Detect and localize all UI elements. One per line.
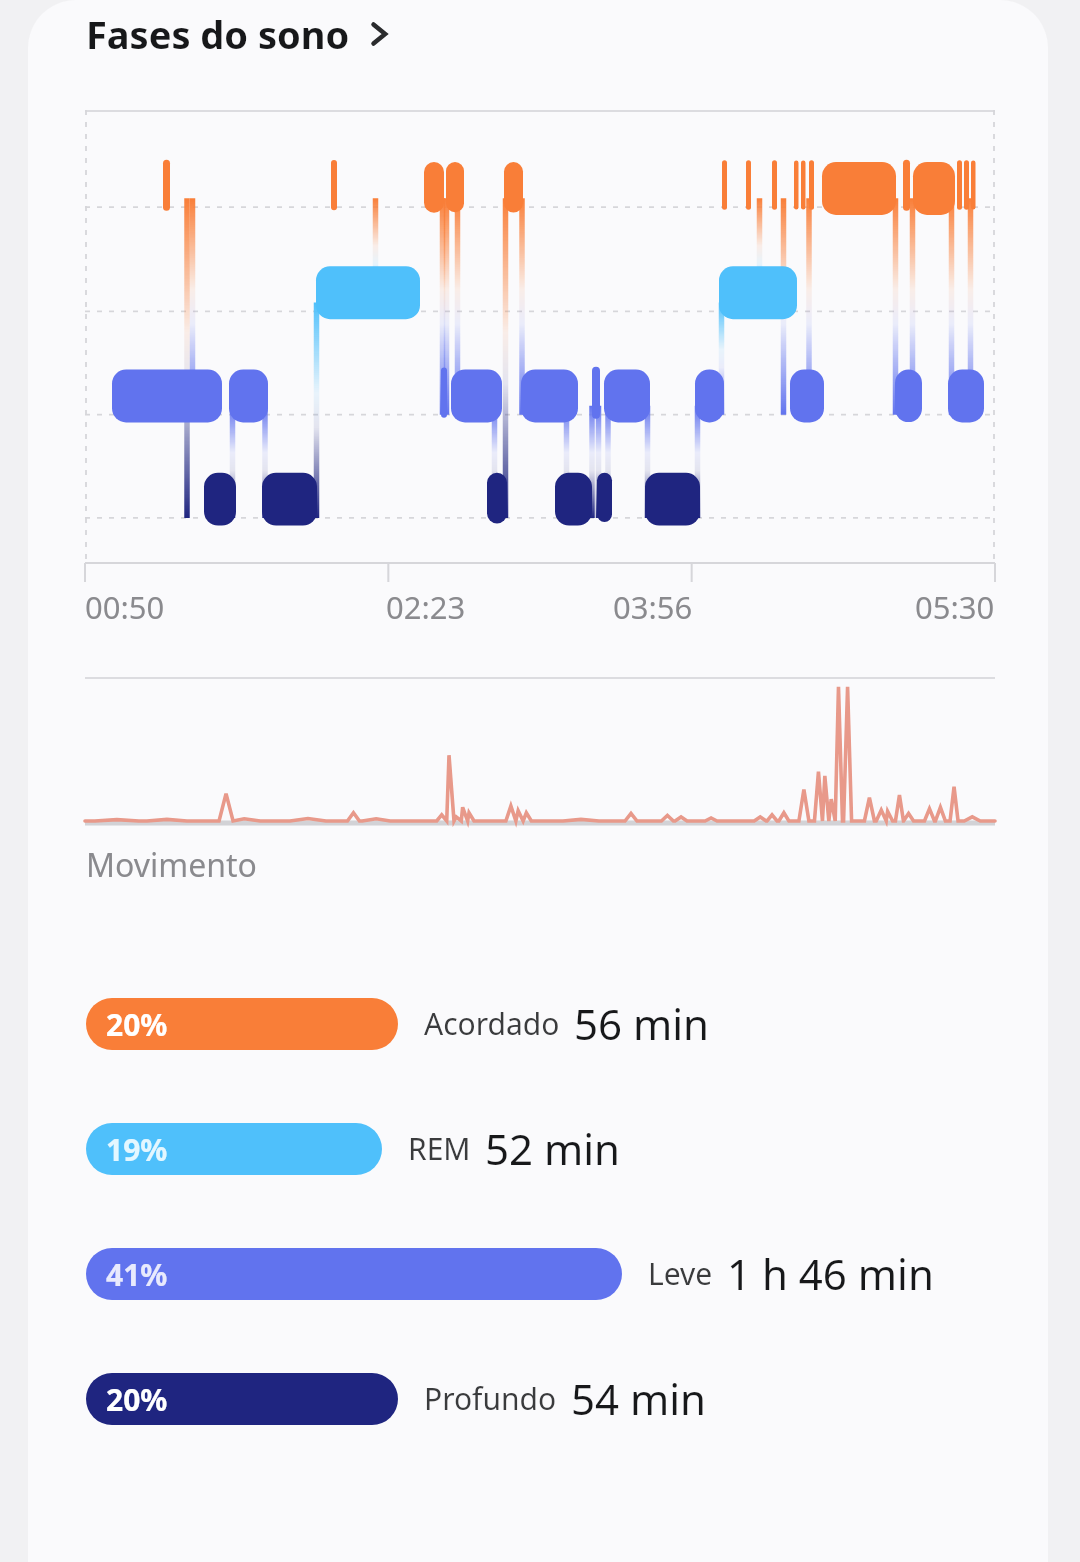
button[interactable]: Fases do sono [28, 0, 1048, 68]
staticText: 00:50 [85, 586, 165, 628]
staticText: 41% [106, 1254, 168, 1295]
button[interactable]: 20% [28, 995, 1048, 1052]
staticText: Fases do sono [86, 8, 350, 60]
staticText: 20% [106, 1379, 168, 1420]
staticText: 52 min [485, 1120, 621, 1177]
staticText: 19% [106, 1129, 168, 1170]
staticText: REM [408, 1128, 471, 1169]
button[interactable]: 19% [28, 1120, 1048, 1177]
staticText: Acordado [424, 1003, 560, 1044]
staticText: Leve [648, 1253, 713, 1294]
staticText: 05:30 [915, 586, 995, 628]
staticText: 20% [106, 1004, 168, 1045]
staticText: 54 min [571, 1370, 707, 1427]
staticText: Movimento [86, 843, 257, 887]
staticText: 56 min [574, 995, 710, 1052]
button[interactable]: 41% [28, 1245, 1048, 1302]
staticText: 1 h 46 min [727, 1245, 934, 1302]
staticText: 02:23 [386, 586, 466, 628]
staticText: Profundo [424, 1378, 557, 1419]
button[interactable]: 20% [28, 1370, 1048, 1427]
staticText: 03:56 [613, 586, 693, 628]
